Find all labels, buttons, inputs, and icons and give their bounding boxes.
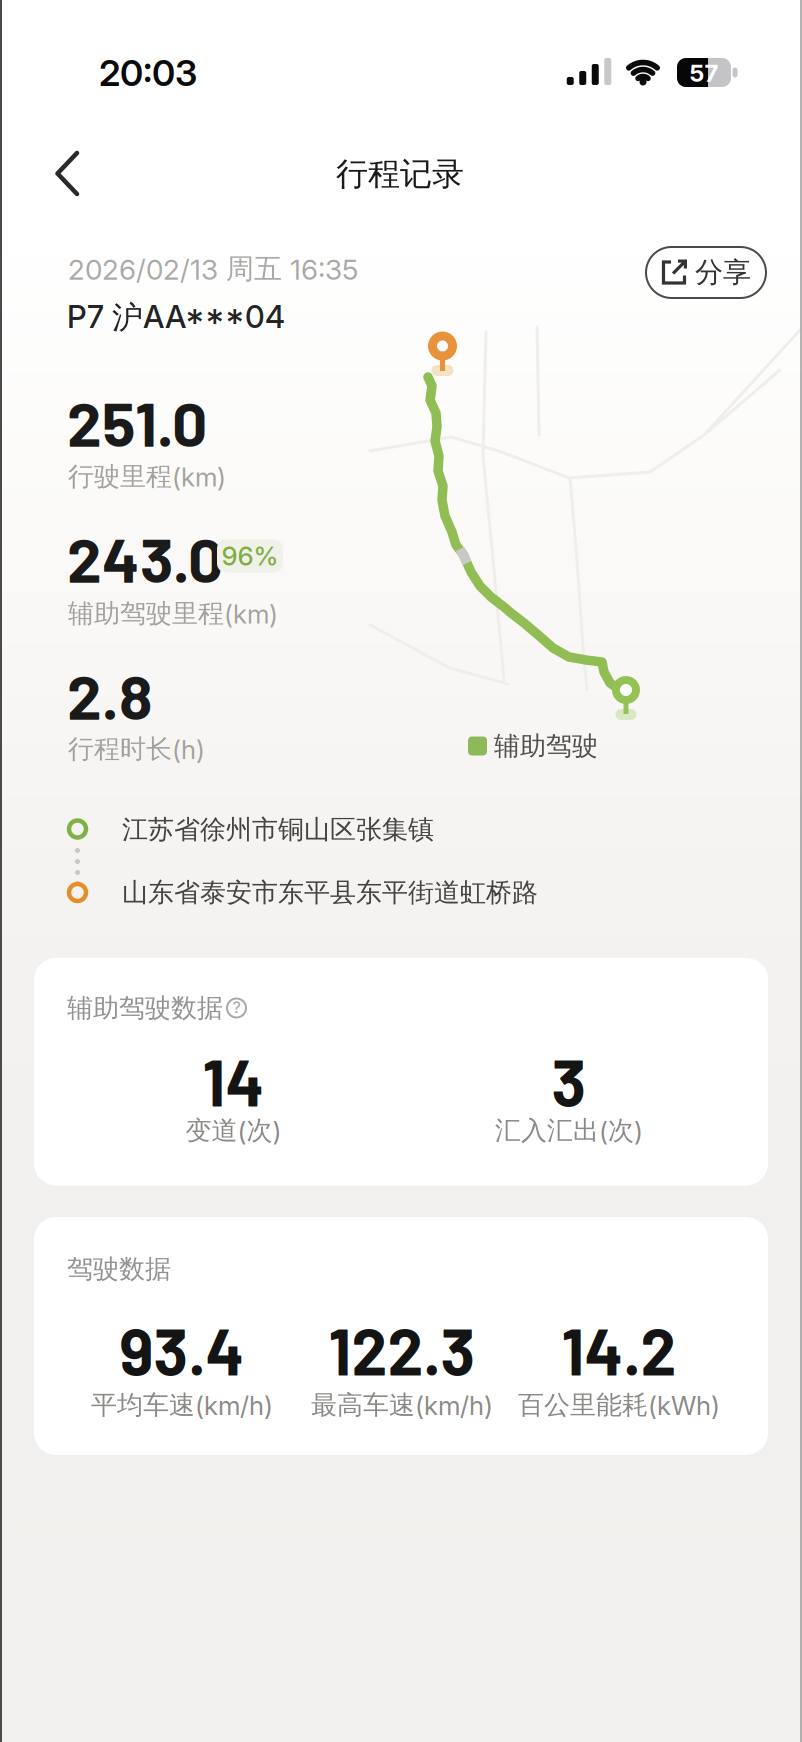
- staticText: 57: [689, 58, 718, 87]
- staticText: 行驶里程(km): [68, 460, 226, 493]
- button[interactable]: 分享: [646, 247, 766, 298]
- staticText: 辅助驾驶里程(km): [68, 597, 278, 630]
- staticText: 3: [551, 1043, 586, 1119]
- staticText: 分享: [695, 255, 751, 290]
- staticText: 驾驶数据: [67, 1253, 171, 1285]
- staticText: 93.4: [119, 1312, 244, 1388]
- staticText: 20:03: [99, 51, 197, 95]
- staticText: 最高车速(km/h): [311, 1389, 493, 1421]
- staticText: 2026/02/13 周五 16:35: [68, 251, 358, 287]
- staticText: 14.2: [561, 1312, 676, 1388]
- staticText: 汇入汇出(次): [495, 1114, 643, 1147]
- staticText: 山东省泰安市东平县东平街道虹桥路: [122, 876, 538, 909]
- button[interactable]: 帮助: [227, 998, 246, 1017]
- staticText: 辅助驾驶数据: [67, 992, 223, 1024]
- button[interactable]: Back: [53, 150, 109, 197]
- staticText: 14: [202, 1043, 264, 1119]
- staticText: 243.0: [67, 521, 223, 595]
- staticText: 平均车速(km/h): [91, 1389, 273, 1421]
- staticText: 行程记录: [336, 154, 464, 194]
- staticText: 辅助驾驶: [494, 730, 598, 762]
- staticText: 96%: [221, 540, 278, 572]
- staticText: 百公里能耗(kWh): [518, 1389, 720, 1421]
- staticText: 行程时长(h): [68, 733, 205, 765]
- staticText: 122.3: [328, 1312, 475, 1388]
- staticText: 251.0: [67, 385, 207, 459]
- staticText: 变道(次): [185, 1114, 281, 1147]
- staticText: ?: [232, 998, 240, 1017]
- staticText: P7 沪AA***04: [67, 298, 285, 337]
- staticText: 江苏省徐州市铜山区张集镇: [122, 813, 434, 846]
- staticText: 2.8: [67, 658, 153, 732]
